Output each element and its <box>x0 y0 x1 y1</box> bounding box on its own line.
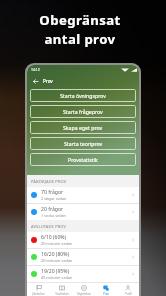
staticText: Profil <box>125 292 132 296</box>
button[interactable]: 19/20 (95%) <box>27 266 139 282</box>
staticText: 1 vecka sedan <box>41 213 66 218</box>
button[interactable]: 16/20 (80%) <box>27 249 139 265</box>
staticText: 2 dagar sedan <box>41 196 67 201</box>
staticText: AVSLUTADE PROV <box>31 224 67 229</box>
staticText: 70 frågor <box>41 189 64 196</box>
staticText: 14:12 <box>31 67 40 72</box>
button[interactable]: Vägmärken <box>73 283 95 296</box>
staticText: Prov <box>103 292 109 296</box>
button[interactable]: 70 frågor <box>27 187 139 203</box>
button[interactable]: Teoriboken <box>50 283 73 296</box>
button[interactable]: Provstatistik <box>30 153 136 166</box>
staticText: PÅBÖRJADE PROV <box>31 179 67 184</box>
staticText: Prov <box>43 78 53 84</box>
staticText: Skapa eget prov <box>63 124 103 131</box>
staticText: Obegränsat antal prov <box>39 11 121 48</box>
staticText: 20 minuter sedan <box>41 241 73 246</box>
staticText: 16/20 (80%) <box>41 251 69 258</box>
button[interactable]: Back <box>31 77 40 86</box>
button[interactable]: 20 frågor <box>27 204 139 220</box>
staticText: Starta frågeprov <box>63 108 103 115</box>
button[interactable]: Prov <box>95 283 117 296</box>
button[interactable]: Starta frågeprov <box>30 105 136 118</box>
button[interactable]: Skapa eget prov <box>30 121 136 134</box>
staticText: Starta övningsprov <box>60 92 106 99</box>
staticText: Provstatistik <box>68 156 98 163</box>
staticText: 45 minuter sedan <box>41 275 73 280</box>
staticText: Vägmärken <box>77 292 91 296</box>
staticText: 20 frågor <box>41 206 64 213</box>
button[interactable]: Jakttecken <box>27 283 50 296</box>
staticText: 6/10 (60%) <box>41 234 67 241</box>
button[interactable]: Starta övningsprov <box>30 89 136 102</box>
staticText: 19/20 (95%) <box>41 268 69 275</box>
staticText: Jakttecken <box>32 292 45 296</box>
staticText: Starta teoriprov <box>64 140 103 147</box>
button[interactable]: Starta teoriprov <box>30 137 136 150</box>
staticText: Teoriboken <box>55 292 69 296</box>
button[interactable]: Profil <box>117 283 139 296</box>
staticText: 20 minuter sedan <box>41 258 73 263</box>
button[interactable]: 6/10 (60%) <box>27 232 139 248</box>
